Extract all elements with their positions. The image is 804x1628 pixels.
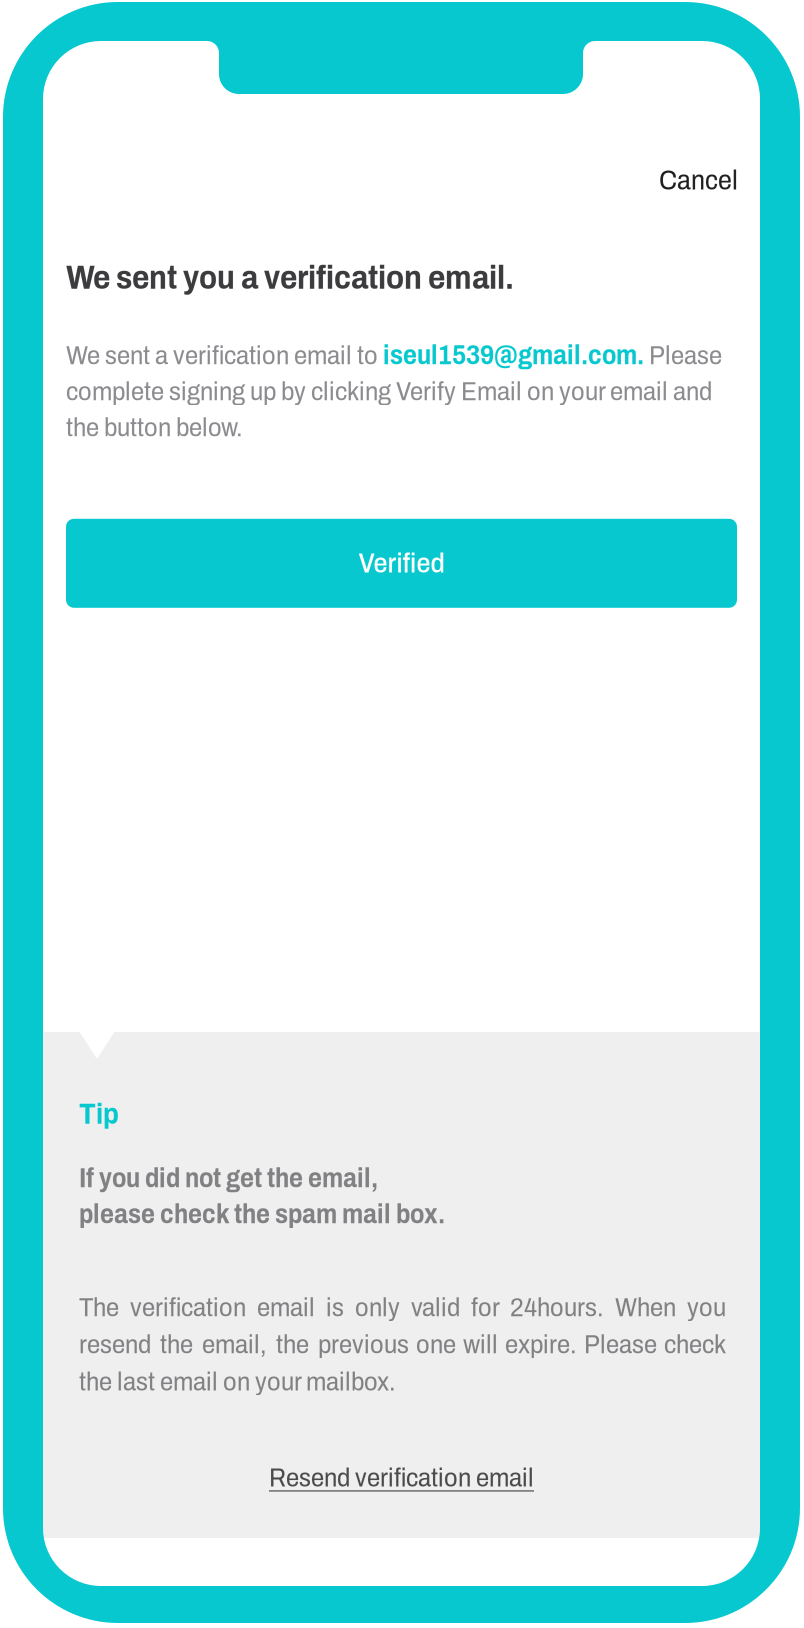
staticText: Tip [79, 1098, 119, 1130]
staticText: If you did not get the email, please che… [79, 1164, 445, 1229]
button[interactable]: Resend verification email [269, 1457, 534, 1498]
staticText: We sent you a verification email. [66, 259, 514, 296]
staticText: Cancel [659, 165, 738, 195]
staticText: The verification email is only valid for… [79, 1293, 726, 1396]
staticText: Resend verification email [269, 1463, 534, 1492]
button[interactable]: Cancel [651, 159, 746, 201]
staticText: Verified [358, 548, 444, 578]
staticText: We sent a verification email to iseul153… [66, 341, 722, 442]
button[interactable]: Verified [66, 519, 737, 608]
